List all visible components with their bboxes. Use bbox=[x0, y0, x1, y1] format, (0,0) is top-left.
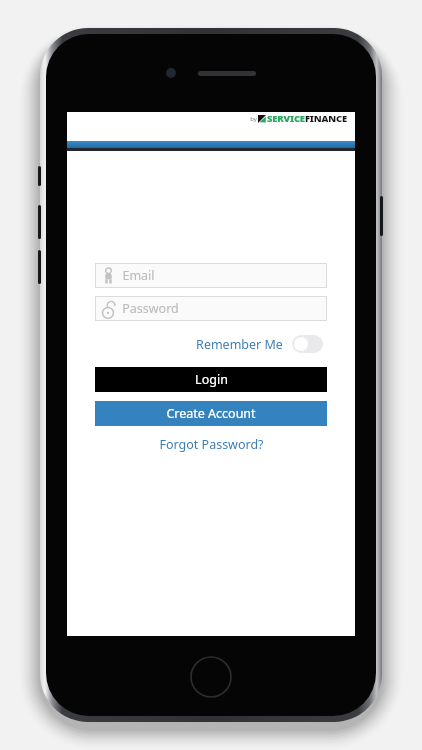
button[interactable]: Login bbox=[95, 367, 327, 392]
button[interactable]: Remember Me bbox=[192, 333, 327, 355]
staticText: by bbox=[249, 115, 258, 123]
button[interactable]: Remember Me toggle bbox=[292, 335, 323, 353]
staticText: Forgot Password? bbox=[159, 436, 264, 453]
staticText: Remember Me bbox=[196, 336, 283, 353]
staticText: Create Account bbox=[166, 405, 256, 422]
button[interactable]: Password bbox=[95, 296, 327, 321]
button[interactable]: Forgot Password? bbox=[149, 433, 274, 456]
staticText: Email bbox=[122, 267, 155, 284]
staticText: Login bbox=[195, 371, 228, 388]
other: Home bbox=[190, 656, 232, 698]
button[interactable]: Email bbox=[95, 263, 327, 288]
staticText: Password bbox=[122, 300, 179, 317]
staticText: SERVICEFINANCE bbox=[267, 112, 347, 125]
button[interactable]: Create Account bbox=[95, 401, 327, 426]
